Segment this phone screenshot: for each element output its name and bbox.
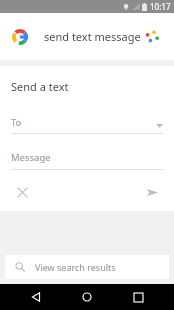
staticText: 10:17 [150, 1, 171, 12]
button[interactable]: Google Assistant [142, 27, 162, 47]
button[interactable]: Send [141, 181, 163, 203]
button[interactable]: Recent apps [123, 284, 153, 310]
button[interactable]: Cancel [11, 181, 33, 203]
staticText: send text message [44, 29, 141, 44]
button[interactable]: Back [21, 284, 51, 310]
staticText: View search results [35, 261, 116, 273]
staticText: Send a text [11, 79, 69, 94]
button[interactable]: send text message [0, 13, 174, 60]
button[interactable]: Home [72, 284, 102, 310]
staticText: To [11, 116, 22, 129]
staticText: Message [11, 151, 51, 164]
button[interactable]: View search results [5, 255, 169, 279]
button[interactable]: Message [11, 151, 163, 170]
button[interactable]: To [11, 113, 163, 134]
